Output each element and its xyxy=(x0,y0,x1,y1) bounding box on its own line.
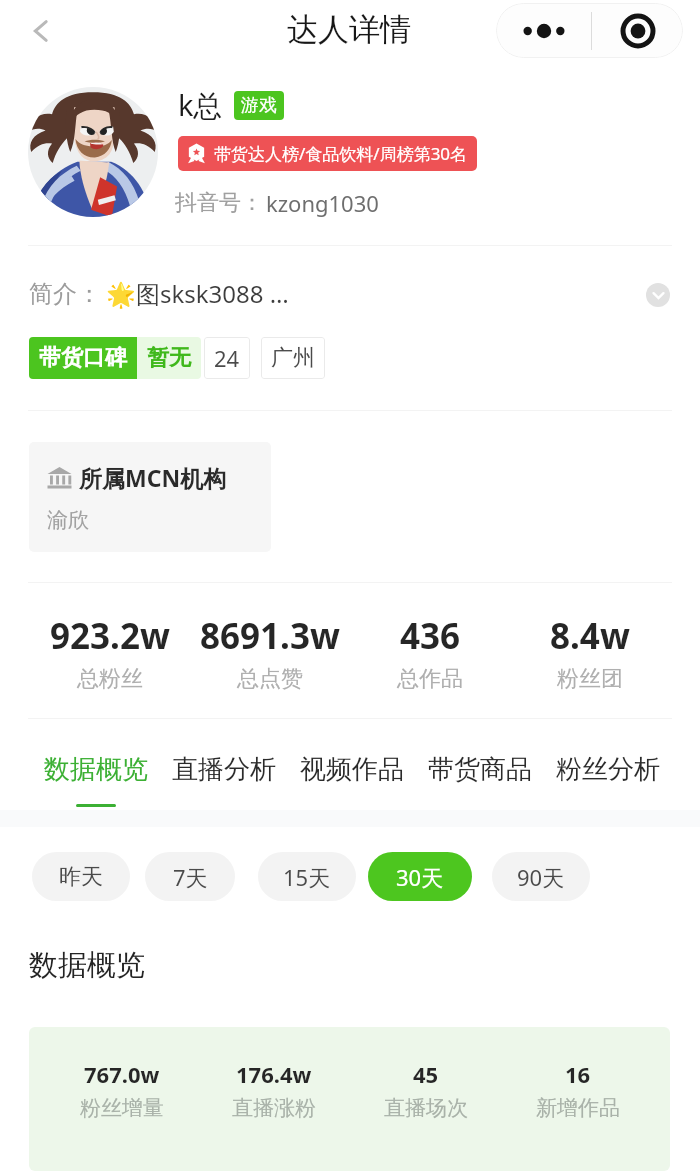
staticText: 30天 xyxy=(396,862,444,892)
button[interactable]: 粉丝分析 xyxy=(550,747,666,813)
staticText: 直播场次 xyxy=(384,1095,468,1121)
button[interactable]: 数据概览 xyxy=(29,947,145,984)
staticText: 所属MCN机构 xyxy=(79,462,227,493)
staticText: 粉丝团 xyxy=(557,665,623,693)
button[interactable]: 所属MCN机构 xyxy=(29,442,271,552)
staticText: 176.4w xyxy=(236,1059,312,1089)
staticText: 抖音号： xyxy=(175,189,263,217)
staticText: 游戏 xyxy=(241,94,277,117)
button[interactable]: 带货口碑 xyxy=(29,337,201,379)
staticText: 直播涨粉 xyxy=(232,1095,316,1121)
staticText: 昨天 xyxy=(59,863,103,891)
button[interactable]: Close mini program xyxy=(592,3,683,58)
staticText: 带货达人榜/食品饮料/周榜第30名 xyxy=(214,142,468,165)
staticText: 简介： xyxy=(29,279,101,309)
button[interactable]: 带货商品 xyxy=(422,747,538,813)
button[interactable]: More options xyxy=(496,3,591,58)
staticText: 数据概览 xyxy=(29,947,145,984)
staticText: 广州 xyxy=(271,344,315,372)
button[interactable]: 直播分析 xyxy=(166,747,282,813)
staticText: 总粉丝 xyxy=(77,665,143,693)
staticText: 90天 xyxy=(517,862,565,892)
button[interactable]: 游戏 xyxy=(234,91,284,120)
button[interactable]: Expand bio xyxy=(646,283,670,307)
button[interactable]: 带货达人榜/食品饮料/周榜第30名 xyxy=(178,136,477,171)
button[interactable]: 24 xyxy=(204,337,250,379)
button[interactable]: 7天 xyxy=(145,852,235,901)
button[interactable] xyxy=(28,87,158,217)
staticText: 带货口碑 xyxy=(39,344,127,372)
staticText: 粉丝分析 xyxy=(556,753,660,786)
staticText: 🌟图sksk3088 … xyxy=(106,277,289,310)
button[interactable]: 30天 xyxy=(368,852,472,901)
staticText: 436 xyxy=(400,612,461,660)
staticText: 粉丝增量 xyxy=(80,1095,164,1121)
staticText: kzong1030 xyxy=(266,188,379,218)
staticText: 767.0w xyxy=(84,1059,160,1089)
button[interactable]: 15天 xyxy=(258,852,356,901)
staticText: 7天 xyxy=(173,862,208,892)
staticText: 923.2w xyxy=(50,612,170,660)
staticText: 总作品 xyxy=(397,665,463,693)
staticText: 8.4w xyxy=(550,612,630,660)
staticText: 45 xyxy=(413,1059,439,1089)
button[interactable]: 90天 xyxy=(492,852,590,901)
staticText: 视频作品 xyxy=(300,753,404,786)
staticText: 8691.3w xyxy=(200,612,340,660)
staticText: 直播分析 xyxy=(172,753,276,786)
button[interactable]: 数据概览 xyxy=(38,747,154,813)
staticText: 渝欣 xyxy=(47,507,89,533)
button[interactable]: 广州 xyxy=(261,337,325,379)
staticText: 达人详情 xyxy=(287,10,411,49)
button[interactable]: 昨天 xyxy=(32,852,130,901)
staticText: 总点赞 xyxy=(237,665,303,693)
staticText: 暂无 xyxy=(147,344,191,372)
button[interactable]: Back xyxy=(17,7,65,55)
staticText: 15天 xyxy=(283,862,331,892)
staticText: 数据概览 xyxy=(44,753,148,786)
staticText: 新增作品 xyxy=(536,1095,620,1121)
staticText: k总 xyxy=(178,85,223,125)
staticText: 24 xyxy=(214,343,240,373)
staticText: 16 xyxy=(565,1059,591,1089)
button[interactable]: 视频作品 xyxy=(294,747,410,813)
staticText: 带货商品 xyxy=(428,753,532,786)
